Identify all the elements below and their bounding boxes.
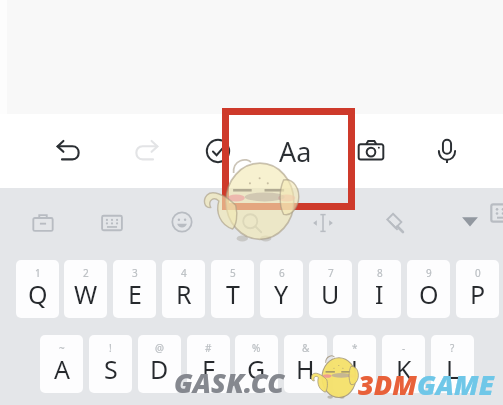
button[interactable]: # [187,335,230,393]
staticText: & [302,341,310,355]
staticText: Q [28,277,48,311]
button[interactable]: 0 [456,260,499,318]
staticText: G [247,352,266,386]
staticText: 1 [35,266,41,280]
button[interactable]: 4 [162,260,205,318]
button[interactable]: Keyboard [91,202,133,244]
staticText: - [402,341,406,355]
staticText: ! [109,341,112,355]
staticText: Aa [279,133,312,170]
button[interactable]: Collapse [449,200,491,242]
staticText: U [321,277,340,311]
button[interactable]: * [333,335,376,393]
button[interactable]: 3 [113,260,156,318]
staticText: A [54,352,70,386]
staticText: 2 [83,266,89,280]
button[interactable]: Camera [350,130,392,172]
button[interactable]: ! [89,335,132,393]
staticText: I [375,277,384,311]
button[interactable]: 9 [407,260,450,318]
button[interactable]: Undo [48,130,90,172]
button[interactable]: 7 [309,260,352,318]
staticText: W [74,277,98,311]
button[interactable]: 5 [211,260,254,318]
staticText: ~ [59,341,65,355]
staticText: F [202,352,215,386]
button[interactable]: Search [231,202,273,244]
button[interactable]: Clipboard [22,202,64,244]
button[interactable]: Redo [125,130,167,172]
staticText: K [396,352,412,386]
button[interactable]: - [382,335,425,393]
button[interactable]: ? [431,335,474,393]
staticText: # [205,341,212,355]
staticText: 6 [279,266,285,280]
staticText: R [176,277,192,311]
button[interactable]: 8 [358,260,401,318]
staticText: 9 [426,266,432,280]
button[interactable]: Emoji [161,201,203,243]
staticText: 4 [181,266,187,280]
staticText: GAME [417,366,494,403]
button[interactable]: Aa [274,130,316,172]
staticText: * [352,341,358,355]
button[interactable]: Check [197,130,239,172]
staticText: H [296,352,315,386]
button[interactable]: & [284,335,327,393]
staticText: @ [155,341,164,355]
button[interactable]: 1 [16,260,59,318]
button[interactable]: 2 [64,260,107,318]
staticText: % [252,341,261,355]
staticText: ? [450,341,455,355]
staticText: 3 [132,266,138,280]
staticText: 5 [230,266,236,280]
button[interactable]: @ [138,335,181,393]
staticText: 3DM [358,366,417,403]
button[interactable]: Theme [372,202,414,244]
button[interactable]: % [235,335,278,393]
staticText: 0 [475,266,481,280]
staticText: O [419,277,439,311]
staticText: D [150,352,169,386]
button[interactable]: Cursor [302,202,344,244]
staticText: GASK.CC [174,364,285,401]
staticText: 7 [328,266,334,280]
staticText: E [128,277,142,311]
button[interactable]: Microphone [426,130,468,172]
staticText: J [351,352,358,386]
staticText: 8 [377,266,383,280]
button[interactable]: 6 [260,260,303,318]
button[interactable]: ~ [40,335,83,393]
staticText: P [470,277,486,311]
staticText: T [226,277,240,311]
staticText: Y [274,277,289,311]
staticText: L [446,352,460,386]
staticText: S [104,352,118,386]
